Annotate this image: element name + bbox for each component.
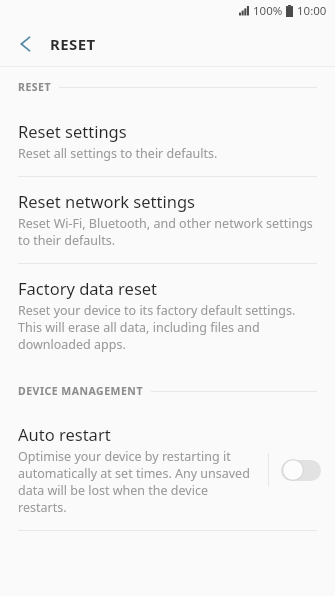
staticText: 10:00 — [297, 3, 327, 19]
button[interactable]: Factory data reset — [0, 264, 335, 367]
staticText: Reset all settings to their defaults. — [18, 145, 218, 162]
staticText: Reset network settings — [18, 190, 195, 212]
staticText: 100% — [253, 3, 283, 19]
staticText: Factory data reset — [18, 277, 158, 299]
staticText: RESET — [50, 34, 96, 54]
button[interactable]: Auto restart toggle — [281, 458, 321, 482]
staticText: Reset settings — [18, 120, 127, 142]
staticText: Reset Wi-Fi, Bluetooth, and other networ… — [18, 215, 317, 249]
staticText: Optimise your device by restarting it au… — [18, 448, 258, 516]
staticText: Auto restart — [18, 423, 111, 445]
button[interactable]: Reset network settings — [0, 177, 335, 263]
button[interactable]: Back — [8, 27, 42, 61]
staticText: RESET — [18, 80, 51, 94]
staticText: DEVICE MANAGEMENT — [18, 384, 143, 398]
button[interactable]: Reset settings — [0, 107, 335, 176]
staticText: Reset your device to its factory default… — [18, 302, 317, 353]
button[interactable]: Auto restart — [0, 410, 335, 530]
